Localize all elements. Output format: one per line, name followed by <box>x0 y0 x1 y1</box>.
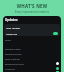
button[interactable]: Toggle <box>53 32 58 35</box>
button[interactable]: Notify me <box>4 30 60 36</box>
staticText: Updates <box>5 18 18 22</box>
button[interactable]: Crash reports <box>3 71 61 72</box>
button[interactable]: Beta channel <box>3 56 61 61</box>
staticText: Notify me <box>6 32 17 35</box>
staticText: Auto update <box>6 26 20 29</box>
button[interactable]: Download size <box>3 51 61 56</box>
button[interactable]: Release notes <box>3 46 61 51</box>
staticText: Every improvement matters <box>0 10 64 14</box>
staticText: Download size <box>5 52 22 55</box>
staticText: More <box>5 38 11 41</box>
staticText: Beta channel <box>5 57 20 60</box>
staticText: Release notes <box>5 47 21 50</box>
button[interactable]: Background sync <box>3 61 61 66</box>
button[interactable]: Analytics <box>3 66 61 71</box>
button[interactable]: Auto update <box>4 24 60 30</box>
staticText: WHAT'S NEW <box>0 3 64 9</box>
staticText: Analytics <box>5 67 15 70</box>
staticText: Background sync <box>5 62 25 65</box>
